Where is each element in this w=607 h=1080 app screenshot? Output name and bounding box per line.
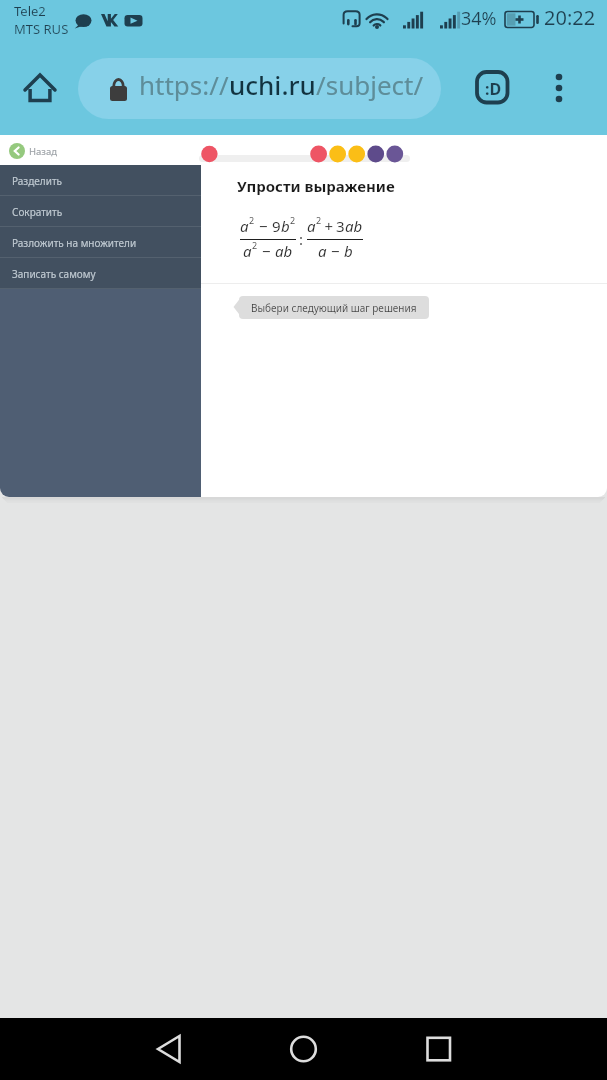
staticText: a (243, 241, 252, 261)
staticText: 34% (461, 6, 497, 31)
button[interactable]: Разделить (0, 165, 201, 196)
staticText: https:// (139, 67, 229, 102)
staticText: 20:22 (544, 4, 596, 31)
staticText: 3 (336, 216, 345, 236)
staticText: Упрости выражение (237, 176, 395, 196)
staticText: : (299, 229, 304, 249)
button[interactable]: More options (539, 67, 581, 109)
staticText: 2 (249, 214, 255, 226)
staticText: b (281, 216, 290, 236)
staticText: /subject/ (316, 67, 424, 102)
staticText: Записать самому (12, 267, 96, 281)
staticText: 9 (272, 216, 281, 236)
button[interactable]: Назад (9, 140, 58, 162)
staticText: Назад (29, 145, 58, 158)
staticText: Разделить (12, 174, 62, 188)
staticText: Tele2 (14, 2, 46, 20)
button[interactable]: Выбери следующий шаг решения (233, 296, 429, 319)
staticText: + (322, 216, 336, 236)
staticText: − (255, 216, 272, 236)
staticText: 2 (252, 239, 258, 251)
staticText: a (318, 241, 327, 261)
staticText: − (258, 241, 275, 261)
staticText: a (240, 216, 249, 236)
staticText: 2 (316, 214, 322, 226)
staticText: − (327, 241, 344, 261)
button[interactable]: Разложить на множители (0, 227, 201, 258)
staticText: Выбери следующий шаг решения (251, 301, 417, 315)
staticText: :D (485, 78, 502, 100)
staticText: ab (275, 241, 293, 261)
staticText: a (307, 216, 316, 236)
staticText: MTS RUS (14, 20, 69, 38)
staticText: Сократить (12, 205, 63, 219)
staticText: 2 (290, 214, 296, 226)
staticText: uchi.ru (229, 67, 316, 102)
staticText: b (344, 241, 353, 261)
button[interactable]: Emoji (471, 67, 514, 110)
button[interactable]: Записать самому (0, 258, 201, 289)
staticText: Разложить на множители (12, 236, 137, 250)
button[interactable]: https:// (78, 58, 441, 119)
button[interactable]: Сократить (0, 196, 201, 227)
staticText: ab (345, 216, 363, 236)
button[interactable]: Home (18, 68, 62, 112)
